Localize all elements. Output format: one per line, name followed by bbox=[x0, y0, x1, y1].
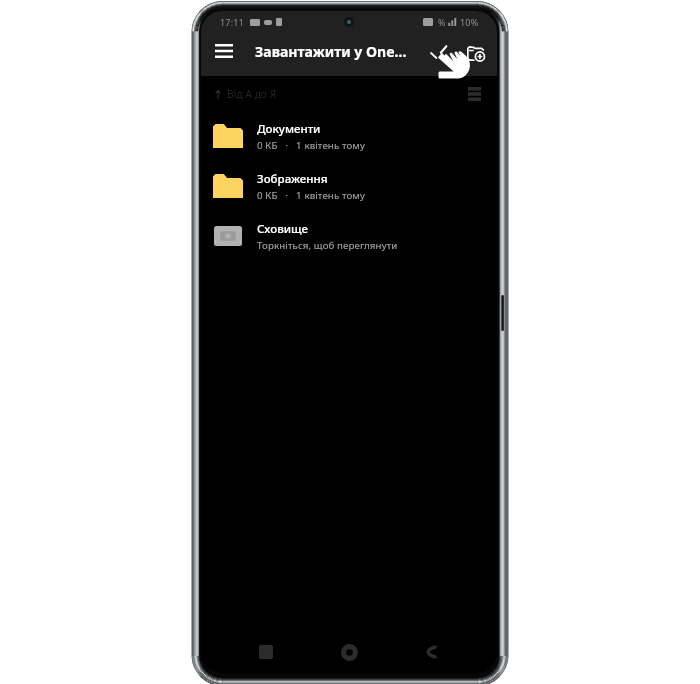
button[interactable]: Документи bbox=[201, 111, 497, 161]
button[interactable]: Create new folder bbox=[458, 34, 492, 68]
staticText: Торкніться, щоб переглянути bbox=[257, 239, 398, 252]
staticText: Від А до Я bbox=[227, 87, 277, 101]
staticText: 0 КБ · 1 квітень тому bbox=[257, 189, 365, 202]
staticText: 17:11 bbox=[220, 16, 245, 28]
button[interactable]: Зображення bbox=[201, 161, 497, 211]
staticText: Зображення bbox=[257, 171, 328, 187]
button[interactable]: Search bbox=[423, 34, 457, 68]
button[interactable]: Сховище bbox=[201, 211, 497, 261]
button[interactable]: Back bbox=[415, 635, 449, 669]
staticText: Завантажити у One… bbox=[255, 42, 407, 61]
button[interactable]: Switch view bbox=[462, 82, 486, 106]
button[interactable]: Recent apps bbox=[249, 635, 283, 669]
button[interactable]: Від А до Я bbox=[201, 79, 497, 109]
staticText: Сховище bbox=[257, 221, 309, 237]
staticText: 10% bbox=[460, 16, 479, 28]
staticText: 0 КБ · 1 квітень тому bbox=[257, 139, 365, 152]
button[interactable]: Navigation menu bbox=[208, 35, 240, 67]
button[interactable]: Home bbox=[332, 635, 366, 669]
staticText: Документи bbox=[257, 121, 321, 137]
staticText: % bbox=[438, 16, 446, 28]
